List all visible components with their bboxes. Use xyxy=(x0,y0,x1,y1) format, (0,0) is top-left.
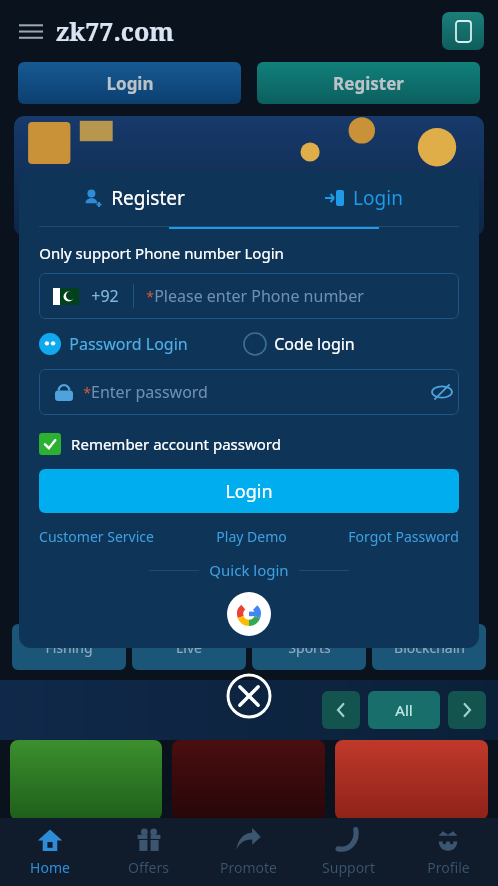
button[interactable]: +92 xyxy=(39,273,459,319)
button[interactable]: Register xyxy=(257,62,480,104)
button[interactable]: Live xyxy=(132,624,246,670)
button[interactable]: Promotion banner xyxy=(14,116,484,236)
button[interactable]: Previous xyxy=(322,691,360,729)
button[interactable]: Menu xyxy=(14,14,48,48)
staticText: Profile xyxy=(427,858,470,877)
staticText: Login xyxy=(225,479,273,504)
staticText: zk77.com xyxy=(56,14,174,48)
staticText: All xyxy=(395,700,413,720)
button[interactable]: Play Demo xyxy=(216,527,287,546)
staticText: Code login xyxy=(274,333,355,355)
button[interactable]: Promote xyxy=(198,818,298,886)
staticText: Blockchain xyxy=(394,638,465,657)
button[interactable]: Login xyxy=(249,170,479,226)
staticText: Only support Phone number Login xyxy=(39,243,284,263)
button[interactable]: Code login xyxy=(244,333,355,355)
button[interactable]: Remember account password xyxy=(39,433,281,455)
button[interactable]: Promotion xyxy=(172,740,325,820)
staticText: Login xyxy=(353,185,403,211)
staticText: Offers xyxy=(128,858,169,877)
staticText: * xyxy=(146,287,154,306)
staticText: Fishing xyxy=(45,638,93,657)
staticText: * xyxy=(83,383,91,402)
button[interactable]: Promotion xyxy=(10,740,162,820)
staticText: +92 xyxy=(91,285,119,307)
staticText: Live xyxy=(176,638,202,657)
staticText: Promote xyxy=(220,858,277,877)
button[interactable]: * xyxy=(39,369,459,415)
button[interactable]: Support xyxy=(298,818,398,886)
button[interactable]: Customer Service xyxy=(39,527,154,546)
button[interactable]: Register xyxy=(19,170,249,226)
button[interactable]: Next xyxy=(448,691,486,729)
button[interactable]: Forgot Password xyxy=(348,527,459,546)
button[interactable]: Password Login xyxy=(39,333,188,355)
staticText: Please enter Phone number xyxy=(154,285,364,307)
staticText: Register xyxy=(333,72,404,95)
button[interactable]: Close xyxy=(226,673,272,719)
button[interactable]: Show password xyxy=(425,375,459,409)
staticText: Sports xyxy=(288,638,331,657)
staticText: Support xyxy=(322,858,375,877)
button[interactable]: Blockchain xyxy=(372,624,486,670)
button[interactable]: Login xyxy=(39,469,459,513)
staticText: Customer Service xyxy=(39,527,154,546)
staticText: Home xyxy=(30,858,70,877)
button[interactable]: Sports xyxy=(252,624,366,670)
staticText: Forgot Password xyxy=(348,527,459,546)
staticText: Login xyxy=(106,72,154,95)
button[interactable]: All xyxy=(368,691,440,729)
button[interactable]: Download app xyxy=(442,12,484,50)
button[interactable]: Fishing xyxy=(12,624,126,670)
staticText: Register xyxy=(111,185,185,211)
button[interactable]: Home xyxy=(0,818,99,886)
staticText: Remember account password xyxy=(71,434,281,454)
staticText: Quick login xyxy=(209,560,289,580)
button[interactable]: Offers xyxy=(99,818,198,886)
button[interactable]: Sign in with Google xyxy=(227,592,271,636)
button[interactable]: Profile xyxy=(398,818,498,886)
button[interactable]: Promotion xyxy=(335,740,488,820)
staticText: Enter password xyxy=(91,381,208,403)
staticText: Play Demo xyxy=(216,527,287,546)
button[interactable]: Login xyxy=(18,62,241,104)
staticText: Password Login xyxy=(69,333,188,355)
